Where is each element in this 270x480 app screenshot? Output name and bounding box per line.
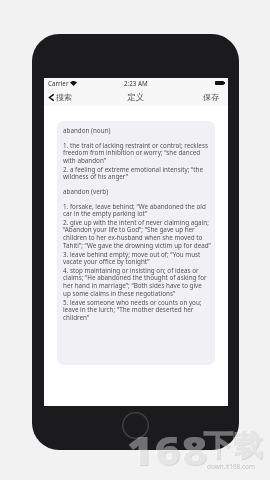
staticText: 2. give up with the intent of never clai… — [63, 218, 211, 250]
staticText: 保存 — [203, 92, 220, 102]
staticText: 搜索 — [56, 92, 72, 102]
staticText: abandon (verb) — [63, 187, 109, 196]
staticText: abandon (noun) — [63, 126, 111, 135]
staticText: 168 — [127, 424, 209, 476]
button[interactable]: 搜索 — [44, 90, 74, 104]
staticText: Carrier — [48, 79, 69, 87]
staticText: down.it168.com — [207, 462, 255, 471]
staticText: 下载 — [205, 428, 263, 465]
button[interactable]: abandon (noun) — [57, 121, 215, 365]
staticText: 168 — [128, 425, 211, 477]
staticText: 1. forsake, leave behind; “We abandoned … — [63, 202, 211, 218]
staticText: 下载 — [204, 427, 262, 464]
staticText: 定义 — [127, 92, 145, 103]
staticText: 1. the trait of lacking restraint or con… — [63, 141, 211, 165]
button[interactable]: 保存 — [195, 90, 228, 104]
staticText: 5. leave someone who needs or counts on … — [63, 298, 211, 322]
staticText: 2:23 AM — [124, 79, 148, 87]
staticText: 3. leave behind empty; move out of; “You… — [63, 250, 211, 266]
button[interactable]: Home — [122, 412, 149, 439]
staticText: 2. a feeling of extreme emotional intens… — [63, 165, 211, 181]
staticText: 4. stop maintaining or insisting on; of … — [63, 266, 211, 298]
